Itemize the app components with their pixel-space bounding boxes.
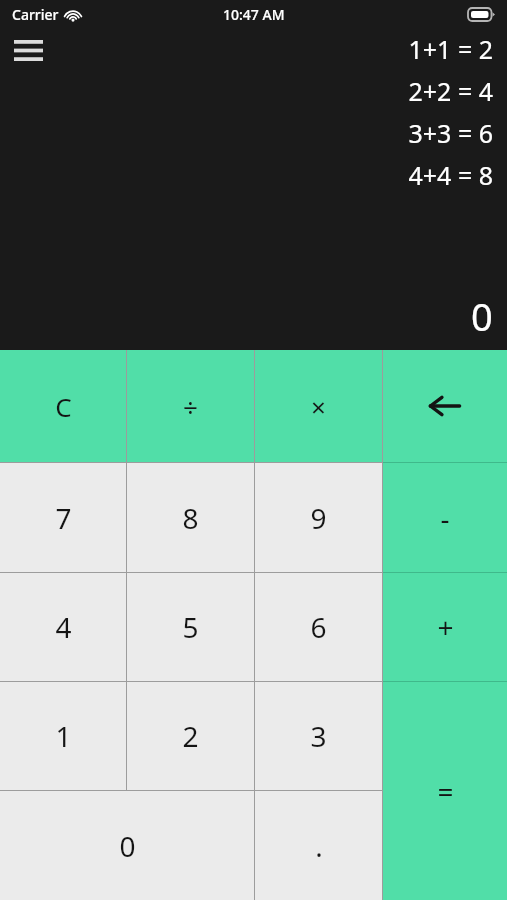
button[interactable]: =: [383, 682, 507, 900]
staticText: +: [437, 608, 454, 646]
button[interactable]: +: [383, 573, 507, 681]
button[interactable]: 0: [0, 791, 254, 900]
button[interactable]: 7: [0, 463, 126, 572]
staticText: 4+4 = 8: [408, 158, 493, 192]
staticText: 3: [310, 717, 327, 755]
button[interactable]: .: [255, 791, 382, 900]
staticText: -: [440, 499, 450, 537]
button[interactable]: 5: [127, 573, 254, 681]
staticText: 0: [471, 290, 493, 342]
staticText: ×: [311, 389, 326, 424]
staticText: 0: [119, 827, 136, 865]
staticText: 8: [182, 499, 199, 537]
staticText: 3+3 = 6: [408, 116, 493, 150]
staticText: 7: [55, 499, 72, 537]
button[interactable]: 8: [127, 463, 254, 572]
button[interactable]: 2: [127, 682, 254, 790]
button[interactable]: Backspace: [383, 350, 507, 462]
staticText: 10:47 AM: [223, 5, 285, 24]
staticText: 9: [310, 499, 327, 537]
button[interactable]: 1: [0, 682, 126, 790]
staticText: =: [437, 772, 454, 810]
button[interactable]: 9: [255, 463, 382, 572]
staticText: Carrier: [12, 5, 59, 24]
button[interactable]: 4: [0, 573, 126, 681]
staticText: ÷: [183, 389, 198, 424]
button[interactable]: C: [0, 350, 126, 462]
staticText: 1+1 = 2: [408, 32, 493, 66]
button[interactable]: 3: [255, 682, 382, 790]
button[interactable]: ÷: [127, 350, 254, 462]
button[interactable]: -: [383, 463, 507, 572]
staticText: 2+2 = 4: [408, 74, 493, 108]
staticText: C: [55, 389, 72, 424]
staticText: 4: [55, 608, 72, 646]
staticText: 5: [182, 608, 199, 646]
staticText: 1: [55, 717, 72, 755]
button[interactable]: Menu: [6, 30, 50, 70]
button[interactable]: 6: [255, 573, 382, 681]
staticText: .: [315, 827, 323, 865]
button[interactable]: ×: [255, 350, 382, 462]
staticText: 6: [310, 608, 327, 646]
staticText: 2: [182, 717, 199, 755]
